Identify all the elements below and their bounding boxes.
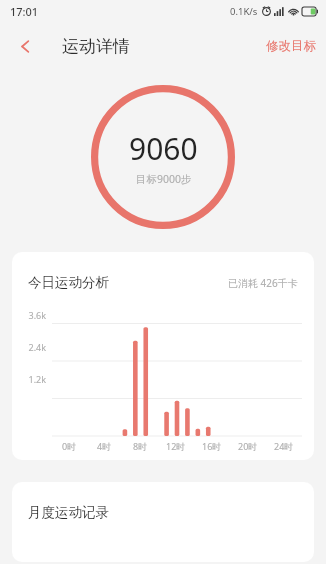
staticText: 目标9000步 [136,172,192,186]
staticText: 已消耗 426千卡 [228,276,298,290]
staticText: 16时 [202,440,222,452]
staticText: 12时 [166,440,186,452]
staticText: 0.1K/s [230,5,258,18]
staticText: 今日运动分析 [28,274,109,291]
staticText: 20时 [238,440,258,452]
staticText: 1.2k [20,373,46,385]
staticText: 3.6k [20,309,46,321]
staticText: 17:01 [10,4,39,19]
staticText: 2.4k [20,341,46,353]
button[interactable]: Back [8,29,42,63]
staticText: 24时 [274,440,294,452]
staticText: 月度运动记录 [28,504,109,521]
staticText: 4时 [97,440,112,452]
staticText: 0时 [62,440,77,452]
button[interactable]: 修改目标 [256,30,326,62]
staticText: 修改目标 [266,38,316,54]
staticText: 9060 [129,128,198,169]
staticText: 运动详情 [62,36,130,57]
button[interactable]: 月度运动记录 [12,482,314,562]
staticText: 8时 [133,440,148,452]
button[interactable]: 今日运动分析 [12,252,314,460]
